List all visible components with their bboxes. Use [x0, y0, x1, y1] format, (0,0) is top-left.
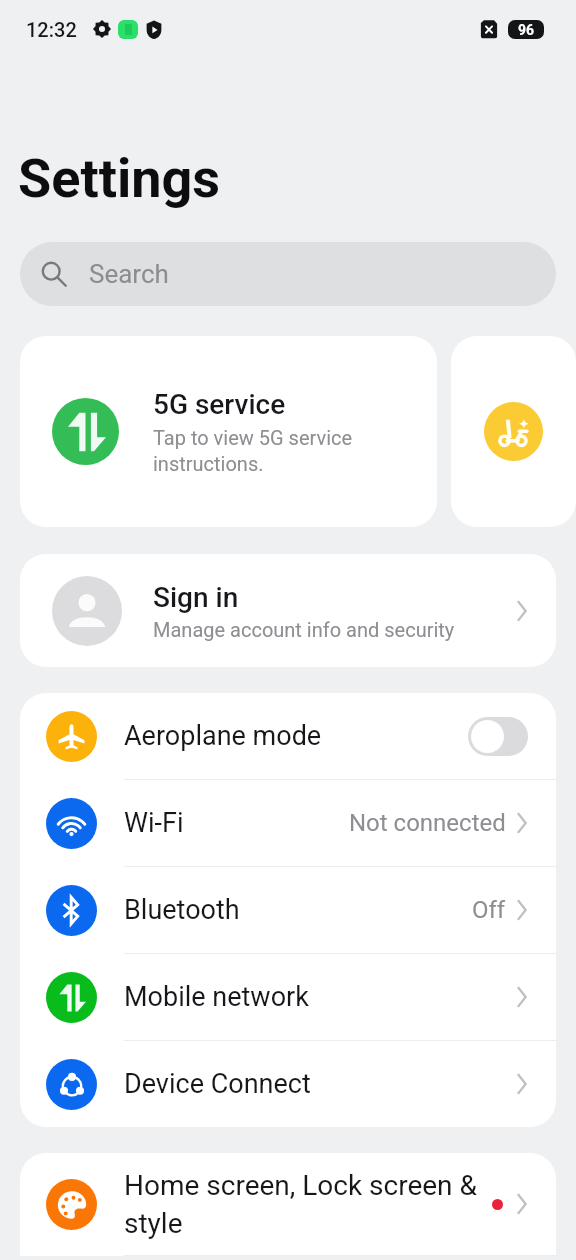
button[interactable]: Aeroplane mode: [20, 693, 556, 779]
staticText: Mobile network: [124, 981, 516, 1013]
staticText: Bluetooth: [124, 894, 472, 926]
button[interactable]: Aeroplane mode: [468, 717, 528, 756]
button[interactable]: [451, 336, 576, 527]
staticText: Aeroplane mode: [124, 720, 468, 752]
staticText: Device Connect: [124, 1068, 516, 1100]
button[interactable]: Bluetooth: [20, 867, 556, 953]
button[interactable]: Sign in: [20, 554, 556, 667]
button[interactable]: Mobile network: [20, 954, 556, 1040]
staticText: Settings: [18, 147, 221, 210]
staticText: Home screen, Lock screen & style: [124, 1169, 492, 1240]
staticText: 96: [518, 22, 535, 38]
other: Search: [40, 260, 68, 288]
button[interactable]: 5G service: [20, 336, 437, 527]
staticText: Tap to view 5G service instructions.: [153, 426, 353, 476]
button[interactable]: Wi-Fi: [20, 780, 556, 866]
staticText: Search: [89, 259, 169, 289]
staticText: Manage account info and security: [153, 618, 455, 641]
staticText: Not connected: [349, 809, 506, 837]
staticText: Wi-Fi: [124, 807, 349, 839]
button[interactable]: Device Connect: [20, 1041, 556, 1127]
staticText: 12:32: [26, 18, 77, 41]
staticText: 5G service: [153, 388, 286, 421]
button[interactable]: Search: [20, 242, 556, 306]
staticText: Off: [472, 896, 506, 924]
staticText: Sign in: [153, 581, 239, 614]
button[interactable]: Home screen, Lock screen & style: [20, 1153, 556, 1255]
